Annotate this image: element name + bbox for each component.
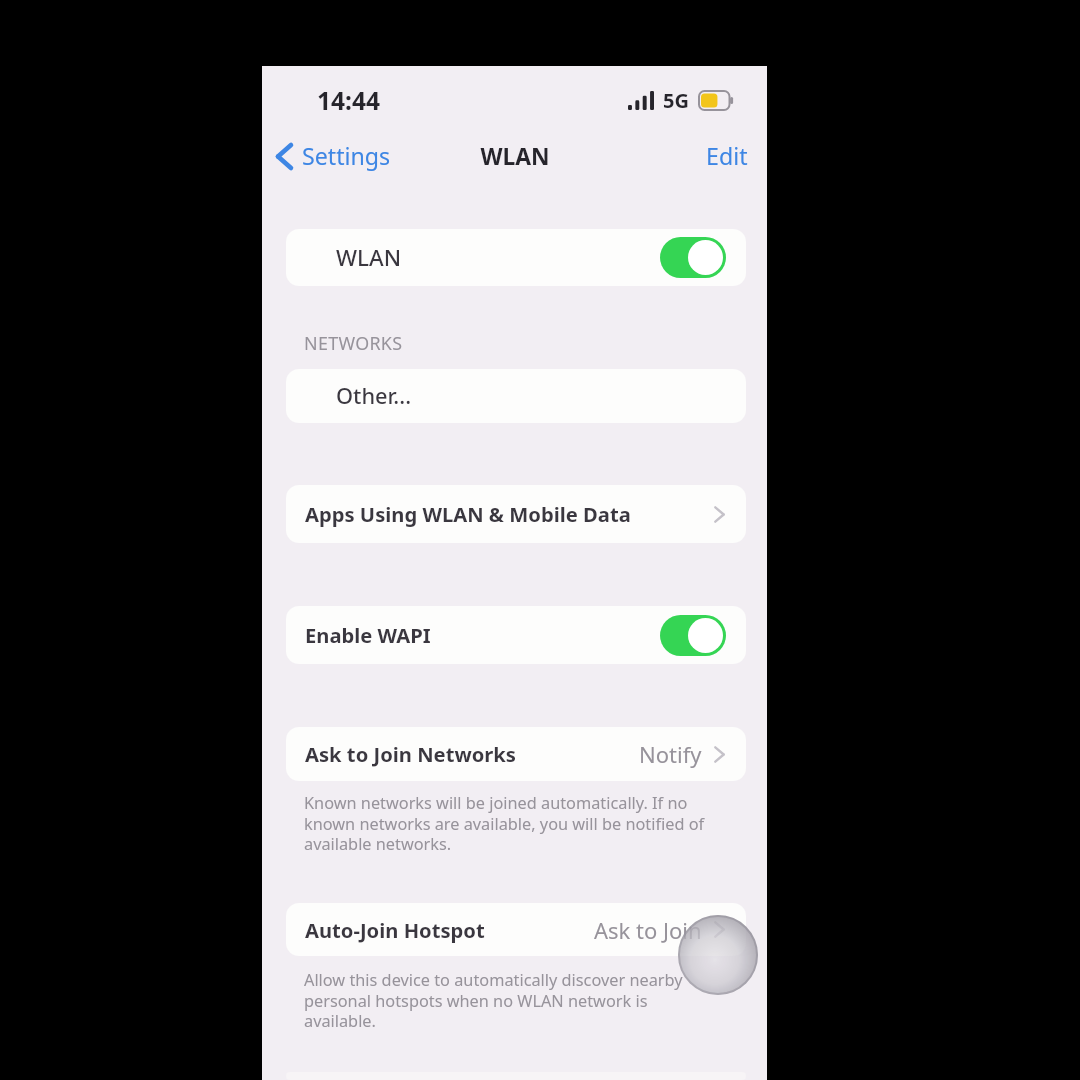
button[interactable]: Edit	[688, 134, 767, 178]
staticText: Known networks will be joined automatica…	[304, 792, 715, 855]
other: Touch pointer	[678, 915, 758, 995]
staticText: Auto-Join Hotspot	[305, 916, 485, 944]
button[interactable]: Auto-Join Hotspot	[286, 903, 746, 956]
staticText: Allow this device to automatically disco…	[304, 969, 715, 1032]
staticText: Apps Using WLAN & Mobile Data	[305, 500, 631, 528]
button[interactable]: WLAN	[286, 229, 746, 286]
button[interactable]: Toggle switch	[660, 237, 726, 278]
staticText: WLAN	[336, 242, 402, 273]
staticText: Ask to Join Networks	[305, 740, 517, 768]
staticText: Other...	[336, 381, 412, 411]
staticText: Edit	[706, 140, 748, 172]
staticText: Notify	[639, 739, 702, 769]
staticText: NETWORKS	[304, 331, 403, 355]
staticText: 5G	[663, 87, 689, 114]
staticText: Ask to Join	[594, 915, 702, 945]
staticText: 14:44	[317, 84, 380, 117]
button[interactable]: Toggle switch	[660, 615, 726, 656]
staticText: Enable WAPI	[305, 621, 431, 649]
button[interactable]: Enable WAPI	[286, 606, 746, 664]
staticText: Settings	[302, 140, 391, 172]
button[interactable]: Other...	[286, 369, 746, 423]
button[interactable]: Settings	[262, 134, 403, 178]
button[interactable]: Apps Using WLAN & Mobile Data	[286, 485, 746, 543]
staticText: WLAN	[480, 141, 550, 172]
button[interactable]: Ask to Join Networks	[286, 727, 746, 781]
